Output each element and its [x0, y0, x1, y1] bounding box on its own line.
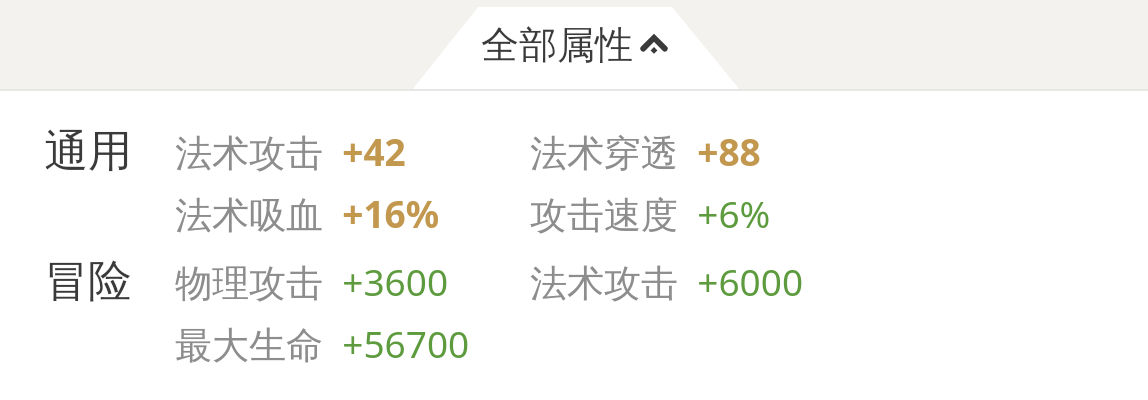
- staticText: 法术攻击 +6000: [530, 256, 804, 307]
- button[interactable]: 法术穿透 +88: [530, 126, 761, 177]
- staticText: 通用: [44, 124, 132, 179]
- staticText: 法术穿透 +88: [530, 126, 761, 177]
- staticText: 全部属性: [481, 21, 633, 69]
- button[interactable]: 全部属性 收起: [400, 0, 752, 90]
- button[interactable]: 法术吸血 +16%: [175, 188, 440, 239]
- button[interactable]: 物理攻击 +3600: [175, 256, 449, 307]
- staticText: 攻击速度 +6%: [530, 188, 771, 239]
- button[interactable]: 攻击速度 +6%: [530, 188, 771, 239]
- button[interactable]: 最大生命 +56700: [175, 318, 470, 369]
- staticText: 最大生命 +56700: [175, 318, 470, 369]
- button[interactable]: 法术攻击 +42: [175, 126, 406, 177]
- staticText: 法术攻击 +42: [175, 126, 406, 177]
- button[interactable]: 法术攻击 +6000: [530, 256, 804, 307]
- staticText: 法术吸血 +16%: [175, 188, 440, 239]
- staticText: 物理攻击 +3600: [175, 256, 449, 307]
- button[interactable]: 冒险: [44, 254, 132, 309]
- button[interactable]: 通用: [44, 124, 132, 179]
- staticText: 冒险: [44, 254, 132, 309]
